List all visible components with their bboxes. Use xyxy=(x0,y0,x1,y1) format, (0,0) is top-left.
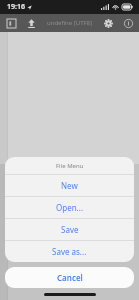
button[interactable]: Cancel xyxy=(5,267,134,288)
button[interactable]: Open... xyxy=(5,197,134,218)
staticText: undefine [UTF8] xyxy=(47,19,92,27)
staticText: New xyxy=(61,180,78,191)
staticText: Save as... xyxy=(52,246,87,257)
staticText: Open... xyxy=(56,202,84,213)
button[interactable]: Settings xyxy=(101,16,115,30)
button[interactable]: Upload xyxy=(24,16,38,30)
button[interactable]: Info xyxy=(121,16,135,30)
staticText: File Menu xyxy=(56,162,84,170)
staticText: Save xyxy=(61,224,79,235)
button[interactable]: Files xyxy=(4,16,18,30)
button[interactable]: New xyxy=(5,175,134,196)
button[interactable]: Save xyxy=(5,219,134,240)
button[interactable]: Save as... xyxy=(5,241,134,262)
staticText: Cancel xyxy=(57,272,83,283)
staticText: 19:16 xyxy=(7,2,25,12)
